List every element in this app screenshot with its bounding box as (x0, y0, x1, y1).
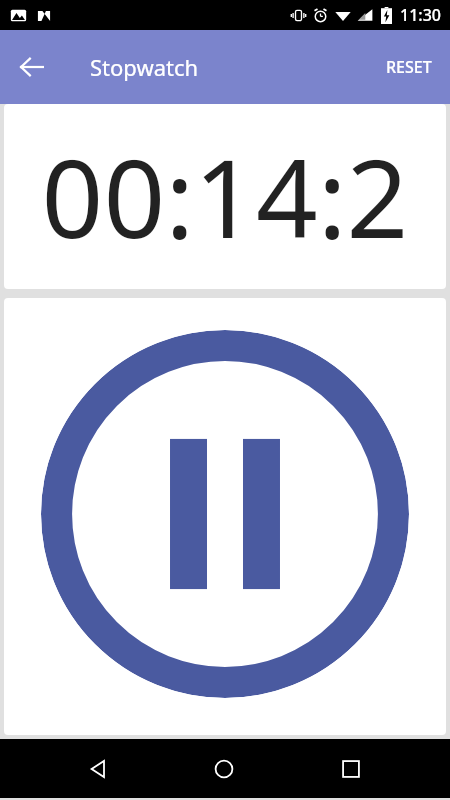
staticText: RESET (386, 56, 432, 78)
staticText: Stopwatch (90, 52, 199, 82)
button[interactable]: Recent apps (323, 741, 379, 797)
button[interactable]: Back (8, 43, 56, 91)
button[interactable]: RESET (374, 46, 444, 88)
button[interactable]: Home (196, 741, 252, 797)
staticText: 11:30 (400, 4, 441, 26)
staticText: 00:14:2 (4, 123, 446, 270)
button[interactable]: Back (70, 741, 126, 797)
button[interactable]: Pause (41, 330, 409, 698)
